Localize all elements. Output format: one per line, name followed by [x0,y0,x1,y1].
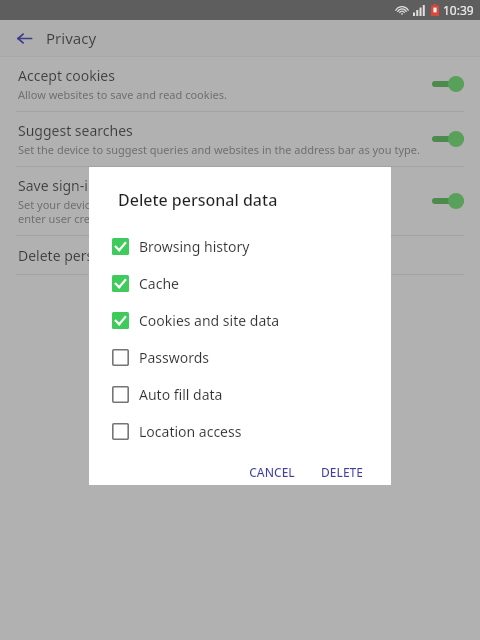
staticText: Set the device to suggest queries and we… [18,142,420,157]
staticText: Browsing history [139,237,250,256]
button[interactable]: Toggle Accept cookies [430,72,466,96]
staticText: 10:39 [443,2,474,18]
staticText: Suggest searches [18,121,133,140]
button[interactable]: Suggest searches [0,112,480,166]
button[interactable]: Passwords [89,339,391,376]
staticText: Set your device to remember your sign-in… [18,197,386,226]
button[interactable]: Toggle Save sign-in info [430,189,466,213]
staticText: Cookies and site data [139,311,280,330]
staticText: Delete personal data [18,246,155,265]
staticText: Delete personal data [118,189,278,211]
staticText: Cache [139,274,179,293]
staticText: Auto fill data [139,385,223,404]
button[interactable]: Delete personal data [0,236,480,274]
staticText: Allow websites to save and read cookies. [18,87,227,102]
staticText: CANCEL [249,464,295,477]
staticText: Passwords [139,348,210,367]
button[interactable]: Accept cookies [0,57,480,111]
staticText: Location access [139,422,242,441]
staticText: DELETE [321,464,363,477]
button[interactable]: Cookies and site data [89,302,391,339]
staticText: Accept cookies [18,66,115,85]
button[interactable]: Cache [89,265,391,302]
staticText: Privacy [46,28,97,48]
button[interactable]: Location access [89,413,391,450]
button[interactable]: CANCEL [241,456,303,485]
button[interactable]: Toggle Suggest searches [430,127,466,151]
button[interactable]: DELETE [313,456,371,485]
button[interactable]: Auto fill data [89,376,391,413]
button[interactable]: Browsing history [89,228,391,265]
staticText: Save sign-in info [18,176,126,195]
button[interactable]: Save sign-in info [0,167,480,235]
button[interactable]: Navigate up [10,24,38,52]
